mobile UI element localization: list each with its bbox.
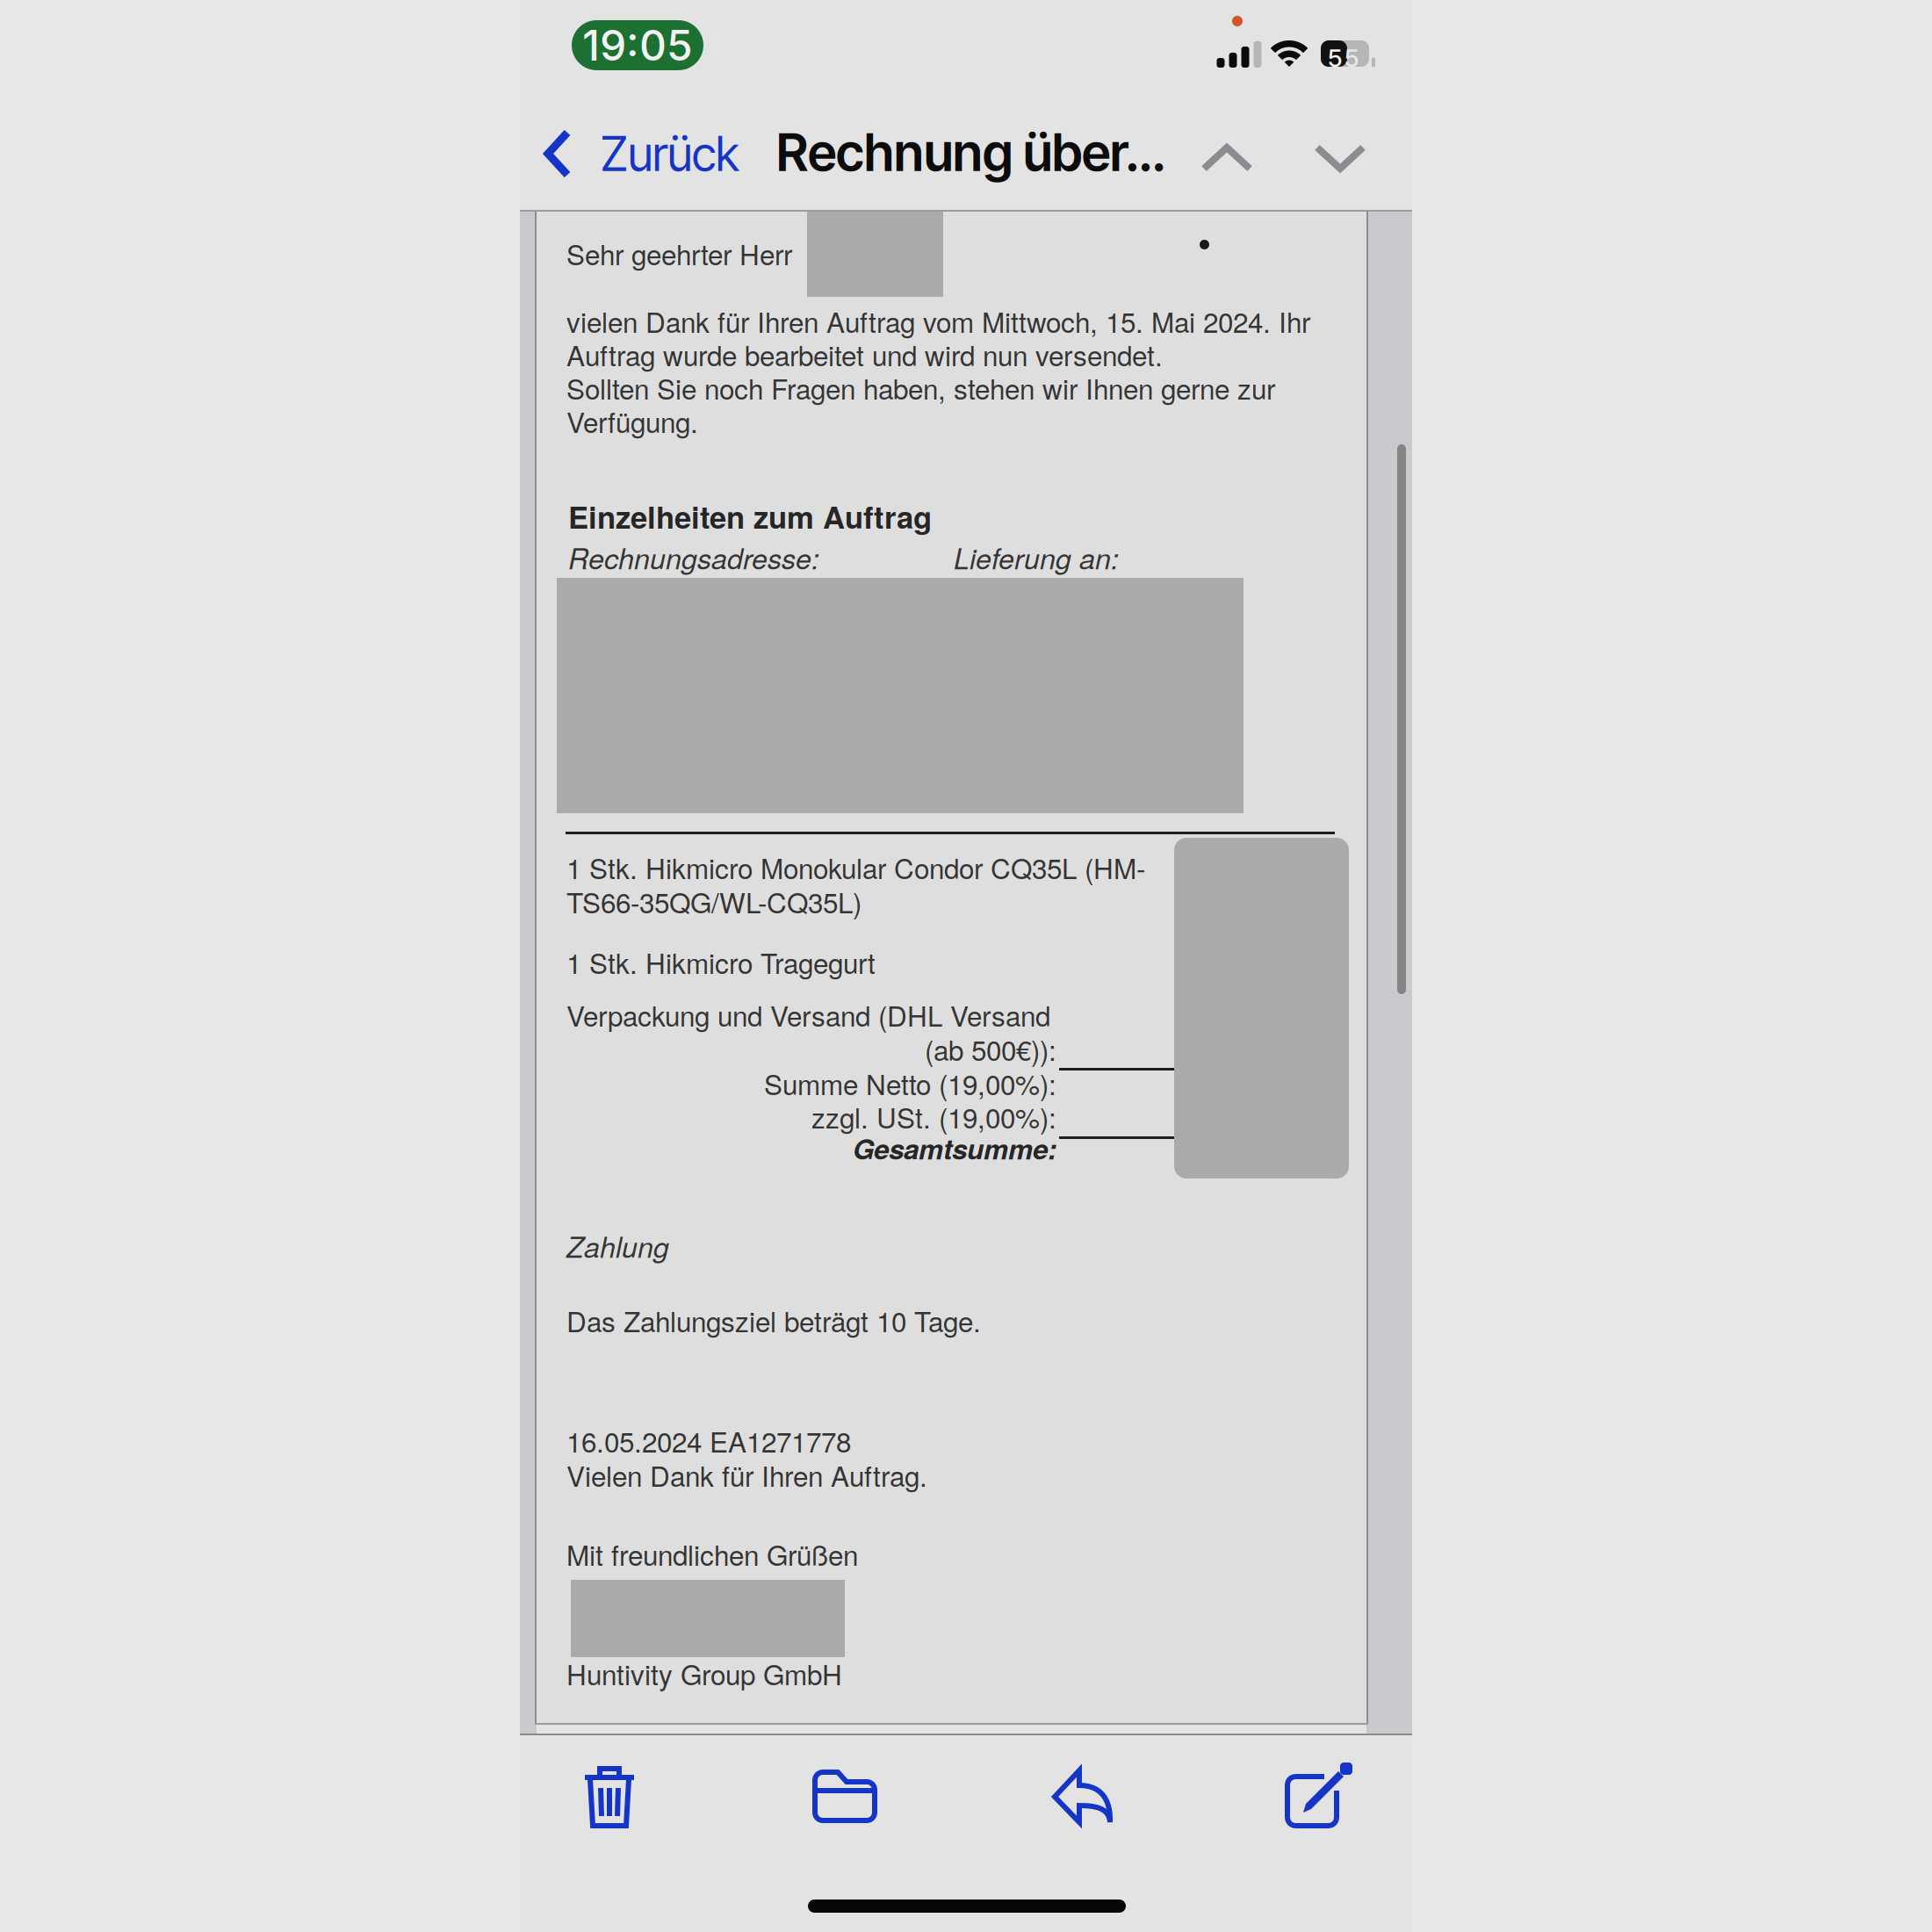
staticText: vielen Dank für Ihren Auftrag vom Mittwo…	[566, 301, 1310, 341]
staticText: Zurück	[601, 126, 739, 182]
staticText: Huntivity Group GmbH	[566, 1654, 842, 1693]
staticText: 5	[1328, 43, 1343, 73]
staticText: Rechnungsadresse:	[568, 537, 819, 577]
button[interactable]: Nächste Nachricht	[1292, 110, 1388, 206]
staticText: 5	[1344, 43, 1359, 73]
staticText: Vielen Dank für Ihren Auftrag.	[566, 1455, 927, 1495]
button[interactable]: Löschen	[535, 1734, 684, 1857]
staticText: Das Zahlungsziel beträgt 10 Tage.	[566, 1301, 981, 1340]
staticText: Summe Netto (19,00%):	[764, 1063, 1056, 1103]
staticText: Sollten Sie noch Fragen haben, stehen wi…	[566, 368, 1275, 408]
staticText: TS66-35QG/WL-CQ35L)	[566, 882, 861, 921]
staticText: Verpackung und Versand (DHL Versand	[566, 995, 1050, 1035]
staticText: Auftrag wurde bearbeitet und wird nun ve…	[566, 335, 1163, 374]
staticText: zzgl. USt. (19,00%):	[811, 1097, 1056, 1136]
button[interactable]: Ablegen	[770, 1734, 919, 1857]
button[interactable]: Zurück	[522, 104, 741, 200]
staticText: 19:05	[582, 20, 693, 71]
staticText: Rechnung über…	[776, 121, 1164, 184]
staticText: 1 Stk. Hikmicro Tragegurt	[566, 942, 876, 982]
button[interactable]: Antworten	[1008, 1734, 1157, 1857]
staticText: (ab 500€)):	[925, 1029, 1056, 1069]
staticText: Zahlung	[566, 1226, 669, 1266]
staticText: Lieferung an:	[954, 537, 1119, 577]
staticText: 1 Stk. Hikmicro Monokular Condor CQ35L (…	[566, 847, 1145, 887]
staticText: Gesamtsumme:	[853, 1128, 1056, 1168]
staticText: Einzelheiten zum Auftrag	[568, 494, 932, 538]
staticText: 16.05.2024 EA1271778	[566, 1421, 851, 1461]
button[interactable]: Neue Nachricht	[1245, 1734, 1395, 1857]
button[interactable]: Vorherige Nachricht	[1179, 110, 1275, 206]
staticText: Sehr geehrter Herr	[566, 234, 792, 273]
staticText: Mit freundlichen Grüßen	[566, 1534, 858, 1574]
staticText: Verfügung.	[566, 401, 698, 441]
